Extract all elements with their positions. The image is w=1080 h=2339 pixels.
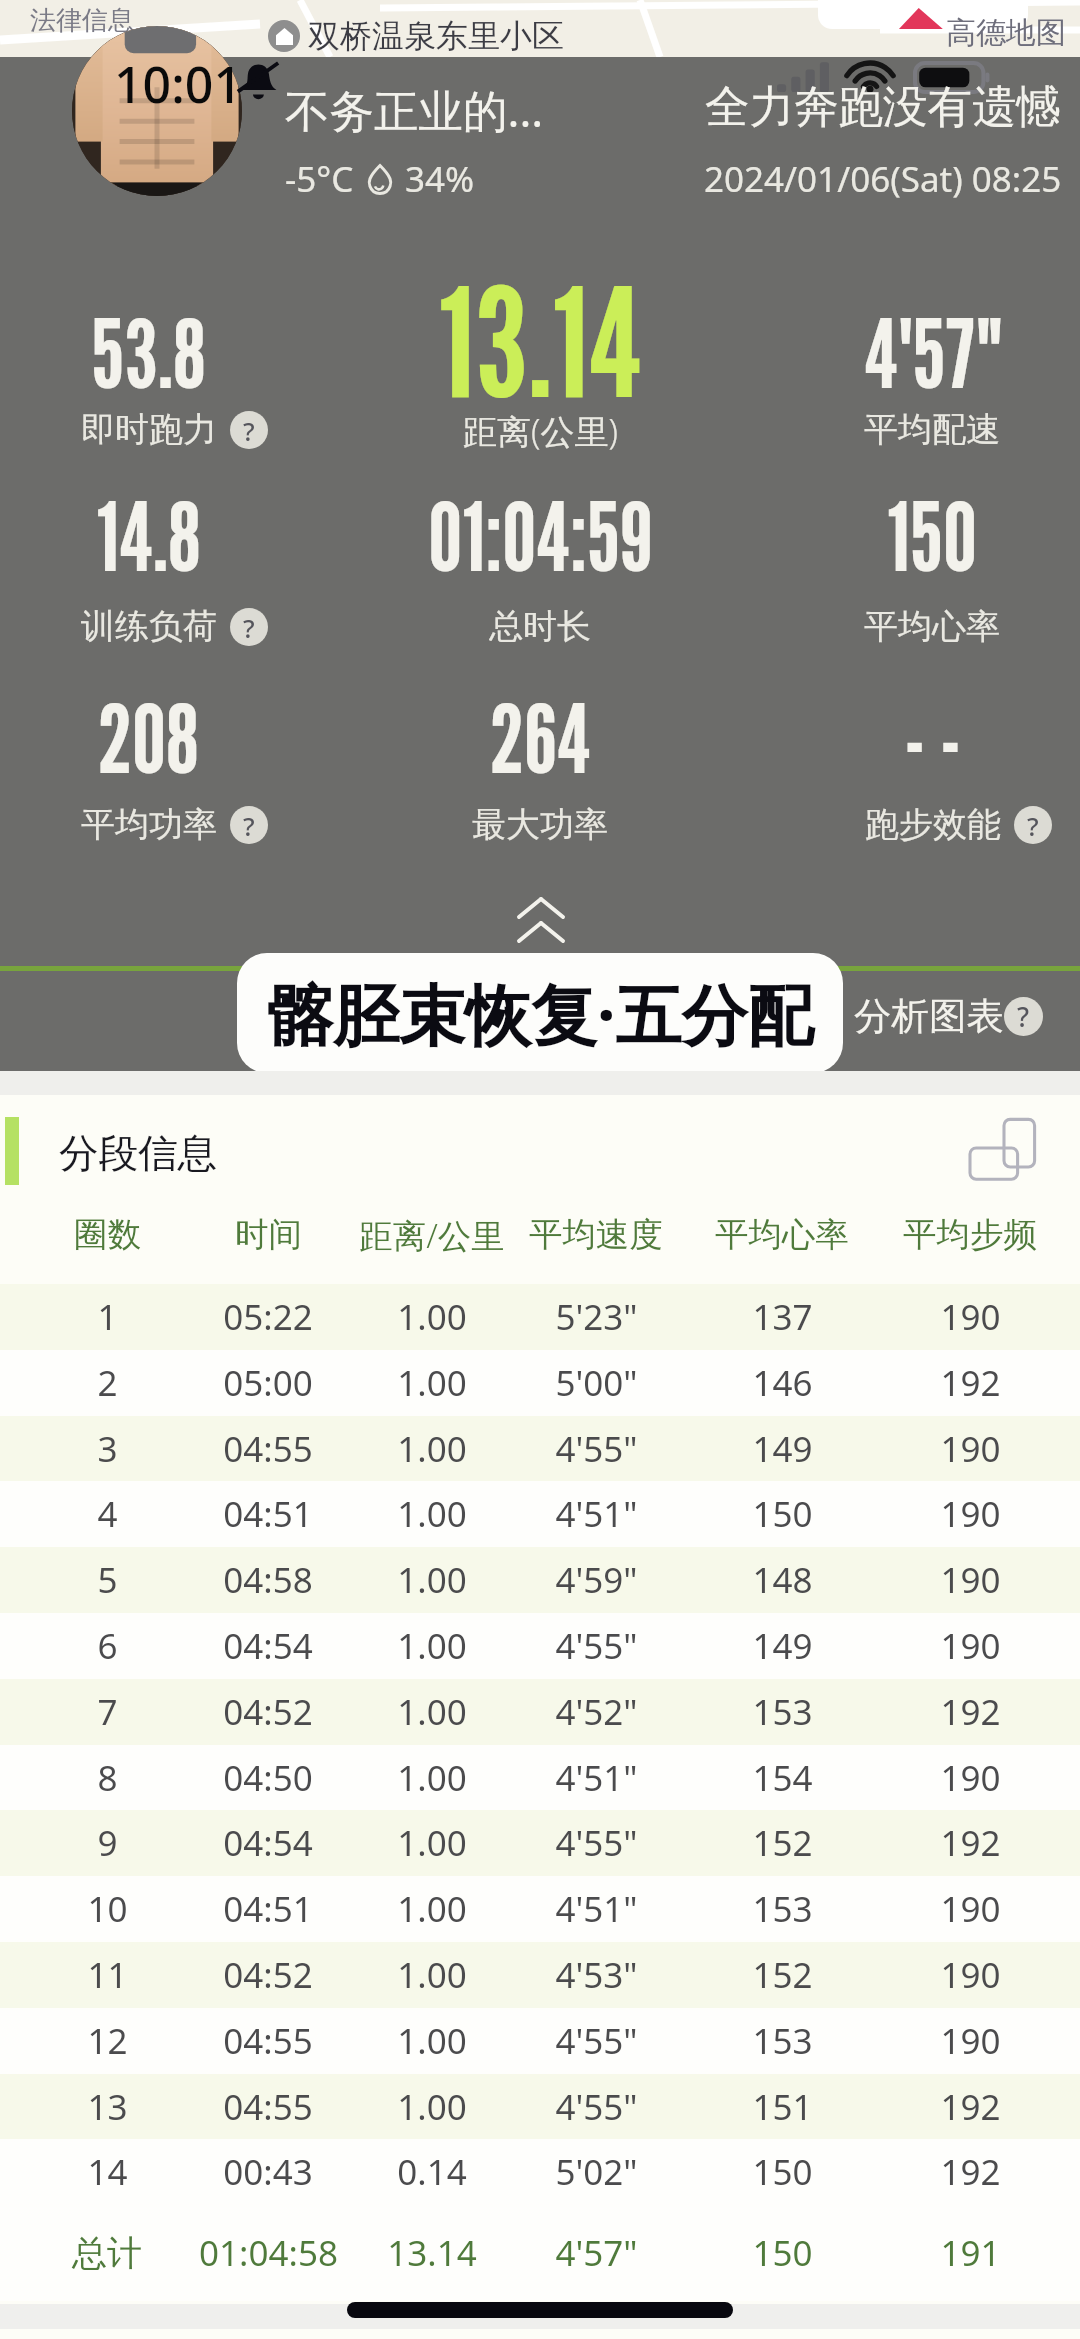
staticText: 04:50 <box>223 1754 313 1802</box>
button[interactable]: 髂胫束恢复·五分配 <box>237 953 843 1073</box>
staticText: 训练负荷 <box>81 605 217 648</box>
staticText: 53.8 <box>91 295 206 410</box>
staticText: 14 <box>87 2148 128 2196</box>
staticText: 1.00 <box>397 1885 467 1933</box>
staticText: 152 <box>752 1819 813 1867</box>
staticText: 2024/01/06(Sat) 08:25 <box>704 155 1062 203</box>
staticText: 146 <box>752 1359 813 1407</box>
staticText: 最大功率 <box>472 803 608 846</box>
staticText: 192 <box>940 1819 1001 1867</box>
staticText: 12 <box>87 2017 128 2065</box>
staticText: 4'55" <box>555 2083 638 2131</box>
staticText: 150 <box>752 2148 813 2196</box>
staticText: 10 <box>87 1885 128 1933</box>
staticText: 4'55" <box>555 1819 638 1867</box>
staticText: 149 <box>752 1622 813 1670</box>
staticText: 1.00 <box>397 1819 467 1867</box>
staticText: 5'00" <box>555 1359 638 1407</box>
staticText: 148 <box>752 1556 813 1604</box>
staticText: 4'51" <box>555 1885 638 1933</box>
staticText: 分段信息 <box>59 1129 217 1179</box>
staticText: 208 <box>97 680 199 795</box>
staticText: 190 <box>940 2017 1001 2065</box>
staticText: 190 <box>940 1425 1001 1473</box>
button[interactable] <box>0 2139 1080 2205</box>
button[interactable] <box>0 2074 1080 2140</box>
staticText: 1.00 <box>397 1425 467 1473</box>
staticText: 4'51" <box>555 1490 638 1538</box>
staticText: 04:52 <box>223 1951 313 1999</box>
button[interactable]: Rotate screen <box>968 1116 1040 1188</box>
staticText: 00:43 <box>223 2148 313 2196</box>
staticText: 137 <box>752 1293 813 1341</box>
staticText: 平均速度 <box>529 1214 663 1256</box>
staticText: 平均心率 <box>864 605 1000 648</box>
staticText: 150 <box>752 1490 813 1538</box>
staticText: 4'51" <box>555 1754 638 1802</box>
button[interactable] <box>0 2205 1080 2301</box>
staticText: 1.00 <box>397 2017 467 2065</box>
staticText: 1.00 <box>397 2083 467 2131</box>
staticText: 平均心率 <box>715 1214 849 1256</box>
staticText: 法律信息 <box>30 4 134 37</box>
staticText: 153 <box>752 2017 813 2065</box>
staticText: 1.00 <box>397 1293 467 1341</box>
staticText: 153 <box>752 1688 813 1736</box>
button[interactable] <box>0 1613 1080 1679</box>
staticText: ? <box>1027 808 1039 843</box>
staticText: 192 <box>940 1359 1001 1407</box>
staticText: 4'57" <box>864 295 1000 410</box>
staticText: 不务正业的... <box>285 79 544 140</box>
button[interactable] <box>0 1350 1080 1416</box>
staticText: ? <box>243 413 255 448</box>
button[interactable] <box>0 1481 1080 1547</box>
button[interactable] <box>0 1547 1080 1613</box>
staticText: 1.00 <box>397 1754 467 1802</box>
staticText: 04:52 <box>223 1688 313 1736</box>
button[interactable] <box>0 1284 1080 1350</box>
staticText: - - <box>904 680 961 795</box>
staticText: 髂胫束恢复·五分配 <box>267 968 814 1058</box>
staticText: 190 <box>940 1754 1001 1802</box>
staticText: 190 <box>940 1490 1001 1538</box>
button[interactable] <box>0 1942 1080 2008</box>
staticText: 4'57" <box>555 2229 638 2277</box>
staticText: 4'59" <box>555 1556 638 1604</box>
staticText: 190 <box>940 1885 1001 1933</box>
staticText: 150 <box>887 478 977 593</box>
staticText: 总计 <box>72 2231 142 2275</box>
staticText: 4 <box>97 1490 118 1538</box>
staticText: 5'23" <box>555 1293 638 1341</box>
button[interactable] <box>0 1876 1080 1942</box>
button[interactable] <box>0 1745 1080 1811</box>
staticText: 7 <box>97 1688 118 1736</box>
staticText: 平均配速 <box>864 408 1000 451</box>
staticText: 153 <box>752 1885 813 1933</box>
button[interactable]: 分析图表 <box>854 993 1043 1040</box>
staticText: 264 <box>489 680 591 795</box>
staticText: 即时跑力 <box>81 408 217 451</box>
staticText: 平均功率 <box>81 803 217 846</box>
staticText: 04:54 <box>223 1622 313 1670</box>
button[interactable] <box>0 1810 1080 1876</box>
button[interactable] <box>0 2008 1080 2074</box>
button[interactable] <box>0 1679 1080 1745</box>
staticText: 152 <box>752 1951 813 1999</box>
staticText: 151 <box>752 2083 813 2131</box>
staticText: 04:55 <box>223 1425 313 1473</box>
staticText: 149 <box>752 1425 813 1473</box>
staticText: 4'55" <box>555 2017 638 2065</box>
staticText: 01:04:59 <box>428 478 653 593</box>
staticText: 3 <box>97 1425 118 1473</box>
button[interactable] <box>0 1416 1080 1482</box>
staticText: 总时长 <box>489 605 591 648</box>
staticText: 04:58 <box>223 1556 313 1604</box>
staticText: 190 <box>940 1951 1001 1999</box>
staticText: 192 <box>940 1688 1001 1736</box>
staticText: 150 <box>752 2229 813 2277</box>
staticText: 05:00 <box>223 1359 313 1407</box>
staticText: 1.00 <box>397 1359 467 1407</box>
staticText: 1.00 <box>397 1556 467 1604</box>
staticText: 9 <box>97 1819 118 1867</box>
staticText: 192 <box>940 2083 1001 2131</box>
